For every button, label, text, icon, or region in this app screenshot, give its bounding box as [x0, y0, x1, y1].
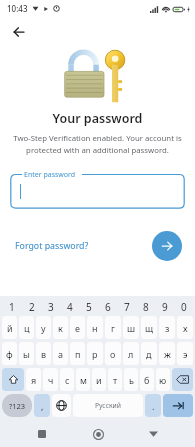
- button[interactable]: х: [177, 316, 193, 339]
- button[interactable]: Continue: [152, 231, 182, 261]
- button[interactable]: з: [159, 316, 175, 339]
- staticText: в: [41, 348, 47, 360]
- button[interactable]: 6: [98, 299, 117, 315]
- staticText: ш: [127, 322, 136, 334]
- staticText: е: [75, 322, 80, 334]
- button[interactable]: Back: [5, 18, 33, 46]
- staticText: т: [113, 374, 118, 386]
- button[interactable]: л: [123, 342, 139, 365]
- staticText: 2: [29, 300, 35, 314]
- staticText: 4: [67, 300, 73, 314]
- staticText: ь: [129, 374, 134, 386]
- staticText: м: [80, 374, 87, 386]
- button[interactable]: ш: [123, 316, 139, 339]
- staticText: и: [96, 374, 102, 386]
- staticText: ж: [164, 348, 171, 360]
- button[interactable]: Русский: [73, 394, 143, 417]
- button[interactable]: е: [70, 316, 85, 339]
- button[interactable]: с: [60, 368, 74, 391]
- button[interactable]: Backspace: [172, 368, 193, 391]
- button[interactable]: я: [26, 368, 41, 391]
- staticText: ф: [6, 348, 13, 360]
- button[interactable]: г: [105, 316, 121, 339]
- button[interactable]: б: [140, 368, 154, 391]
- button[interactable]: 9: [155, 299, 174, 315]
- button[interactable]: 5: [79, 299, 98, 315]
- button[interactable]: 8: [136, 299, 155, 315]
- staticText: ы: [23, 348, 30, 360]
- button[interactable]: ч: [43, 368, 58, 391]
- staticText: й: [7, 322, 13, 334]
- staticText: к: [58, 322, 63, 334]
- button[interactable]: р: [87, 342, 103, 365]
- staticText: я: [31, 374, 37, 386]
- staticText: д: [146, 348, 152, 360]
- staticText: Enter password: [24, 170, 76, 180]
- button[interactable]: ь: [124, 368, 138, 391]
- staticText: .: [152, 400, 155, 412]
- button[interactable]: ю: [156, 368, 170, 391]
- staticText: з: [165, 322, 170, 334]
- staticText: а: [58, 348, 64, 360]
- staticText: ?123: [9, 401, 26, 411]
- staticText: Forgot password?: [15, 240, 89, 252]
- button[interactable]: Forgot password?: [12, 237, 92, 255]
- staticText: 1: [9, 300, 15, 314]
- button[interactable]: 3: [41, 299, 60, 315]
- staticText: г: [111, 322, 115, 334]
- staticText: 10:43: [7, 3, 28, 14]
- staticText: 7: [124, 300, 130, 314]
- staticText: л: [128, 348, 134, 360]
- button[interactable]: н: [87, 316, 103, 339]
- button[interactable]: ц: [19, 316, 34, 339]
- button[interactable]: Change language: [52, 394, 71, 417]
- button[interactable]: Shift: [2, 368, 24, 391]
- button[interactable]: п: [70, 342, 85, 365]
- staticText: н: [92, 322, 98, 334]
- staticText: о: [110, 348, 116, 360]
- staticText: х: [183, 322, 188, 334]
- button[interactable]: 7: [117, 299, 136, 315]
- staticText: у: [41, 322, 46, 334]
- button[interactable]: т: [108, 368, 122, 391]
- staticText: 0: [181, 300, 187, 314]
- staticText: Your password: [0, 110, 195, 127]
- staticText: 9: [162, 300, 168, 314]
- staticText: с: [65, 374, 70, 386]
- button[interactable]: 2: [22, 299, 41, 315]
- button[interactable]: ?123: [2, 394, 32, 417]
- button[interactable]: щ: [141, 316, 157, 339]
- button[interactable]: .: [145, 394, 161, 417]
- staticText: ч: [48, 374, 54, 386]
- button[interactable]: к: [53, 316, 68, 339]
- staticText: ,: [41, 400, 44, 412]
- button[interactable]: Back: [140, 421, 166, 447]
- staticText: 5: [86, 300, 92, 314]
- button[interactable]: Recents: [29, 421, 55, 447]
- staticText: 8: [143, 300, 149, 314]
- button[interactable]: и: [92, 368, 106, 391]
- staticText: Two-Step Verification enabled. Your acco…: [10, 133, 185, 155]
- button[interactable]: Enter: [163, 394, 193, 417]
- button[interactable]: а: [53, 342, 68, 365]
- button[interactable]: ж: [159, 342, 175, 365]
- staticText: р: [92, 348, 98, 360]
- button[interactable]: м: [76, 368, 90, 391]
- button[interactable]: ы: [19, 342, 34, 365]
- button[interactable]: ф: [2, 342, 17, 365]
- button[interactable]: в: [36, 342, 51, 365]
- button[interactable]: о: [105, 342, 121, 365]
- button[interactable]: й: [2, 316, 17, 339]
- button[interactable]: Home: [85, 421, 111, 447]
- staticText: Русский: [95, 401, 122, 410]
- button[interactable]: э: [177, 342, 193, 365]
- button[interactable]: д: [141, 342, 157, 365]
- staticText: 3: [48, 300, 54, 314]
- button[interactable]: 1: [2, 299, 22, 315]
- button[interactable]: Enter password: [10, 169, 185, 209]
- staticText: ц: [24, 322, 30, 334]
- button[interactable]: ,: [34, 394, 50, 417]
- button[interactable]: у: [36, 316, 51, 339]
- button[interactable]: 0: [174, 299, 193, 315]
- button[interactable]: 4: [60, 299, 79, 315]
